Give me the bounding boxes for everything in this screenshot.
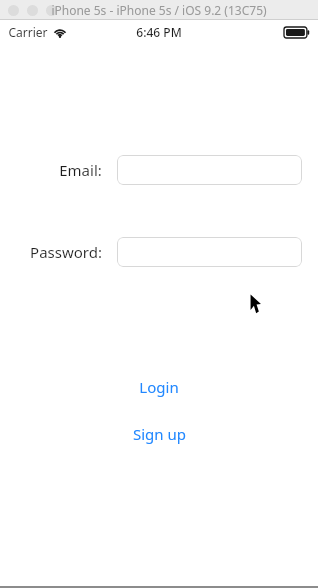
other: Wi-Fi signal <box>53 27 67 38</box>
staticText: Password: <box>30 242 102 262</box>
staticText: iPhone 5s - iPhone 5s / iOS 9.2 (13C75) <box>51 2 267 18</box>
staticText: 6:46 PM <box>136 24 182 40</box>
button[interactable]: Login <box>129 374 189 400</box>
staticText: Login <box>139 377 179 397</box>
button[interactable] <box>117 237 302 267</box>
staticText: Sign up <box>133 424 186 444</box>
button[interactable] <box>117 155 302 185</box>
button[interactable] <box>8 5 19 16</box>
staticText: Carrier <box>8 24 48 40</box>
button[interactable] <box>46 5 57 16</box>
button[interactable] <box>27 5 38 16</box>
other: Battery full <box>284 27 310 38</box>
button[interactable]: Sign up <box>123 421 196 447</box>
staticText: Email: <box>59 160 102 180</box>
